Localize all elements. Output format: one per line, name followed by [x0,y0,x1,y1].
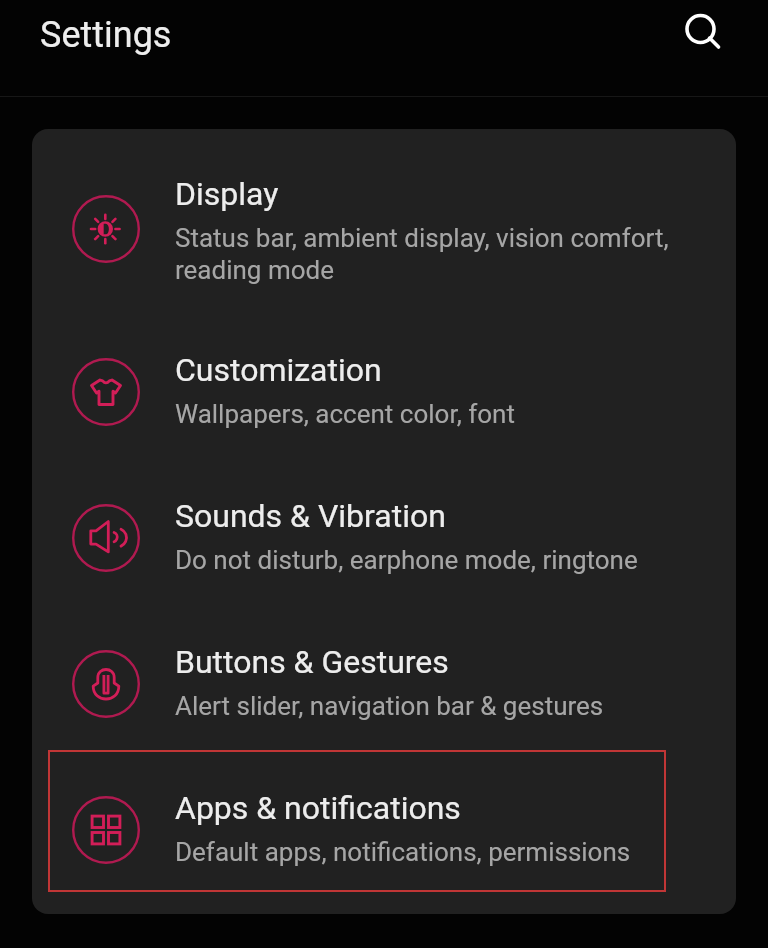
staticText: Sounds & Vibration [175,497,446,535]
staticText: Settings [40,14,172,56]
staticText: Customization [175,351,382,389]
button[interactable]: Customization [32,319,736,465]
staticText: Default apps, notifications, permissions [175,837,631,867]
staticText: Apps & notifications [175,789,461,827]
button[interactable]: Apps & notifications [32,757,736,903]
button[interactable]: Search [676,3,728,55]
staticText: Status bar, ambient display, vision comf… [175,223,687,285]
staticText: Do not disturb, earphone mode, ringtone [175,545,638,575]
staticText: Alert slider, navigation bar & gestures [175,691,604,721]
button[interactable]: Sounds & Vibration [32,465,736,611]
staticText: Wallpapers, accent color, font [175,399,515,429]
staticText: Buttons & Gestures [175,643,449,681]
staticText: Display [175,175,279,213]
button[interactable]: Buttons & Gestures [32,611,736,757]
button[interactable]: Display [32,139,736,319]
